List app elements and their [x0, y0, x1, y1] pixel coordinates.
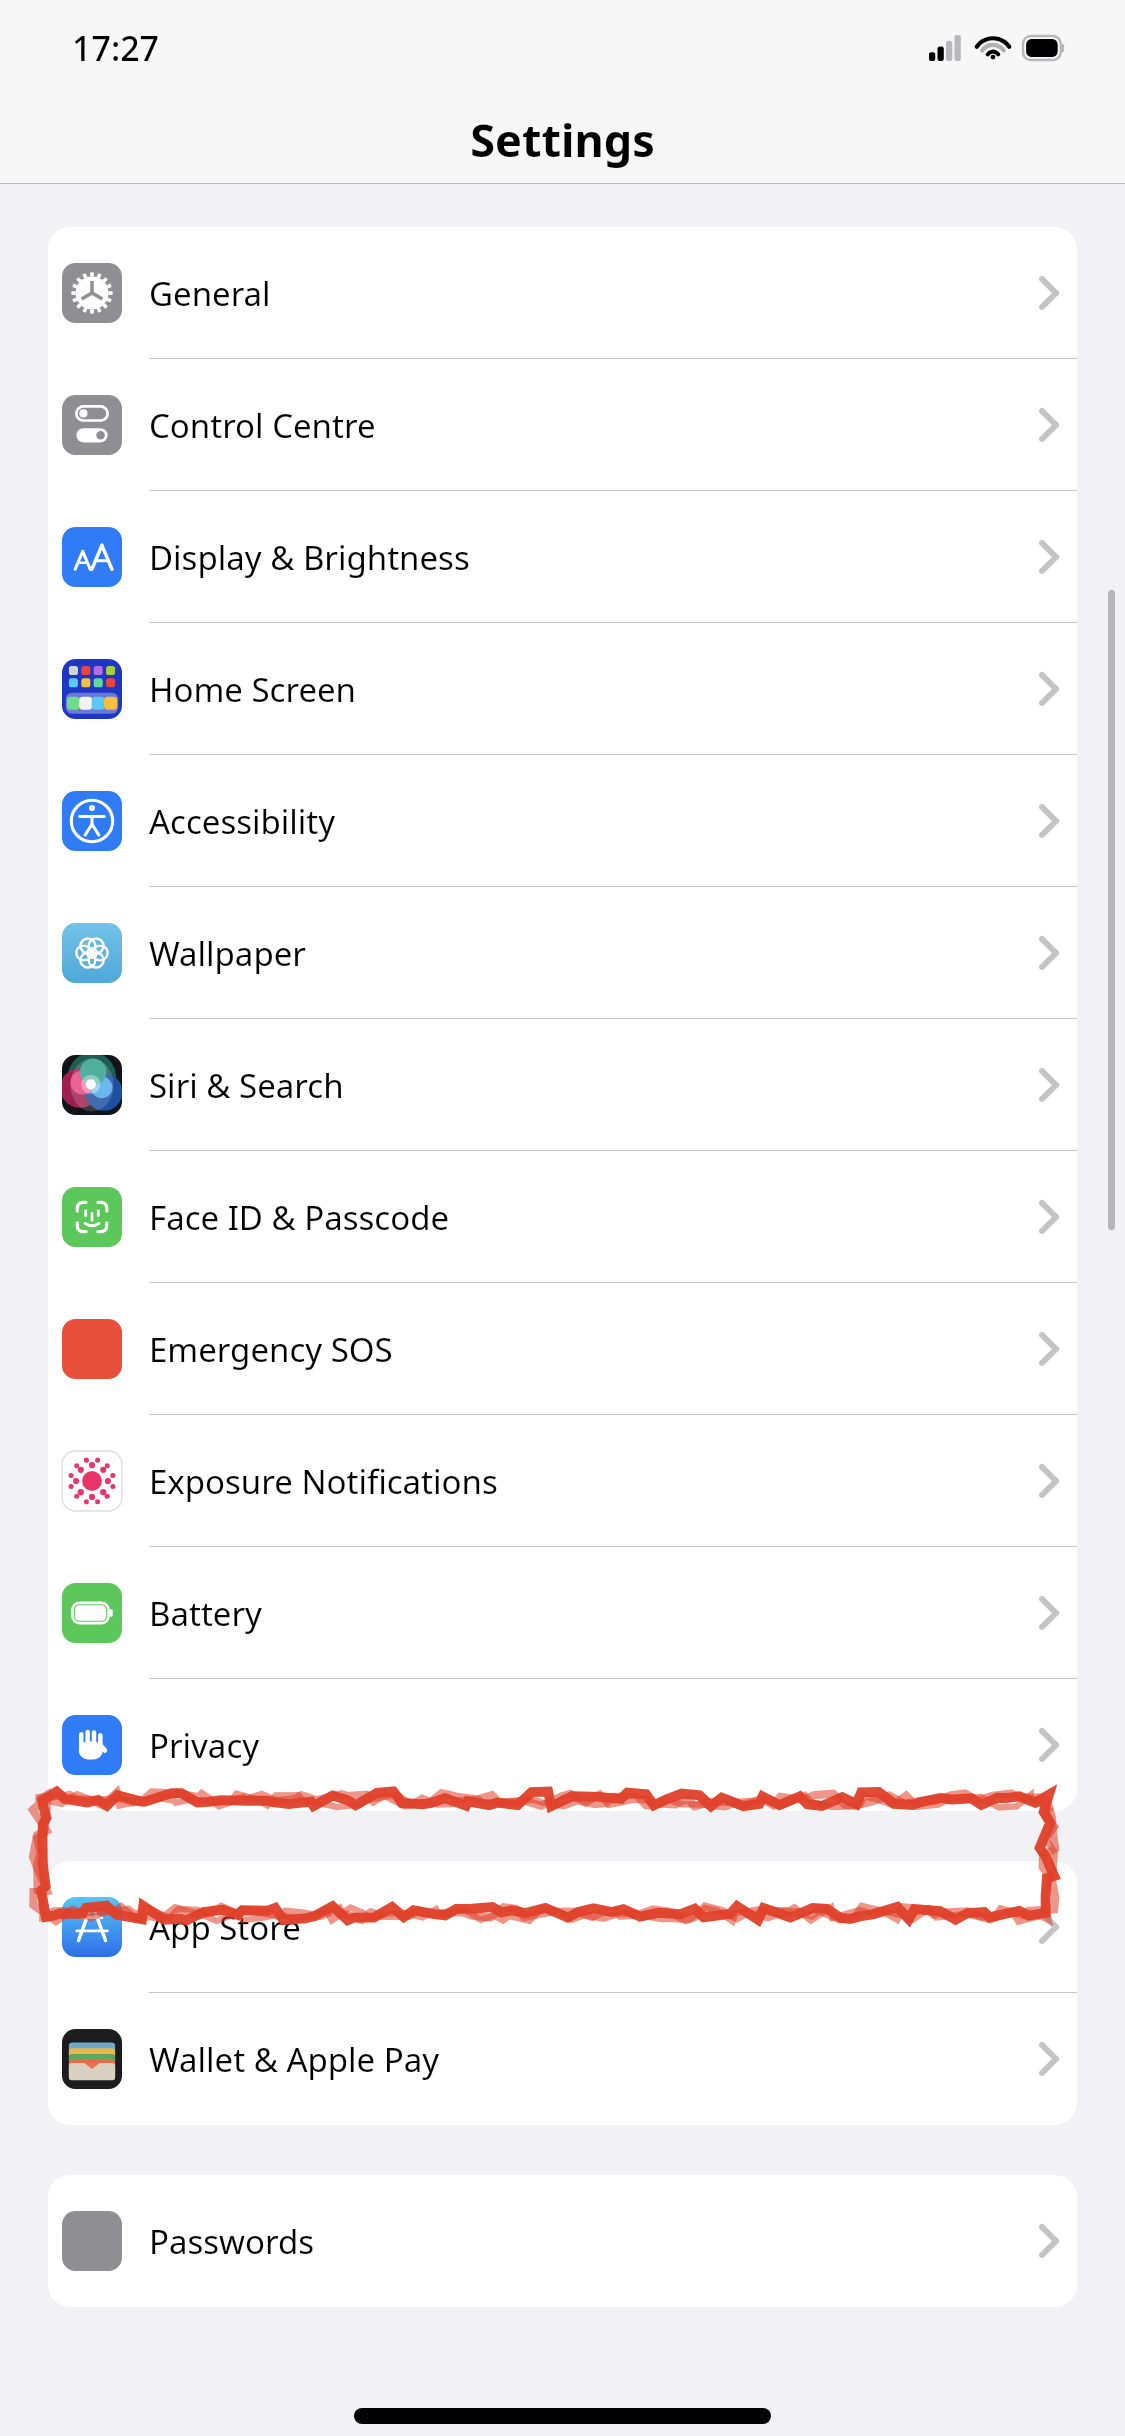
staticText: Display & Brightness — [149, 535, 470, 580]
button[interactable]: Accessibility — [48, 755, 1077, 887]
button[interactable]: Passwords — [48, 2175, 1077, 2307]
button[interactable]: General — [48, 227, 1077, 359]
button[interactable]: Wallpaper — [48, 887, 1077, 1019]
staticText: Settings — [470, 109, 655, 170]
button[interactable]: Wallet & Apple Pay — [48, 1993, 1077, 2125]
button[interactable]: Control Centre — [48, 359, 1077, 491]
button[interactable]: Exposure Notifications — [48, 1415, 1077, 1547]
staticText: Battery — [149, 1591, 262, 1636]
staticText: Privacy — [149, 1723, 260, 1768]
staticText: App Store — [149, 1905, 301, 1950]
staticText: Accessibility — [149, 799, 336, 844]
button[interactable]: Siri & Search — [48, 1019, 1077, 1151]
staticText: Face ID & Passcode — [149, 1195, 450, 1240]
staticText: General — [149, 271, 271, 316]
staticText: Wallet & Apple Pay — [149, 2037, 440, 2082]
staticText: Exposure Notifications — [149, 1459, 498, 1504]
staticText: Emergency SOS — [149, 1327, 393, 1372]
staticText: Siri & Search — [149, 1063, 344, 1108]
button[interactable]: Battery — [48, 1547, 1077, 1679]
button[interactable]: Emergency SOS — [48, 1283, 1077, 1415]
button[interactable]: App Store — [48, 1861, 1077, 1993]
staticText: Home Screen — [149, 667, 357, 712]
staticText: Wallpaper — [149, 931, 306, 976]
staticText: 17:27 — [72, 25, 160, 71]
button[interactable]: Home Screen — [48, 623, 1077, 755]
button[interactable]: Display & Brightness — [48, 491, 1077, 623]
staticText: Passwords — [149, 2219, 315, 2264]
staticText: Control Centre — [149, 403, 376, 448]
button[interactable]: Privacy — [48, 1679, 1077, 1811]
button[interactable]: Face ID & Passcode — [48, 1151, 1077, 1283]
